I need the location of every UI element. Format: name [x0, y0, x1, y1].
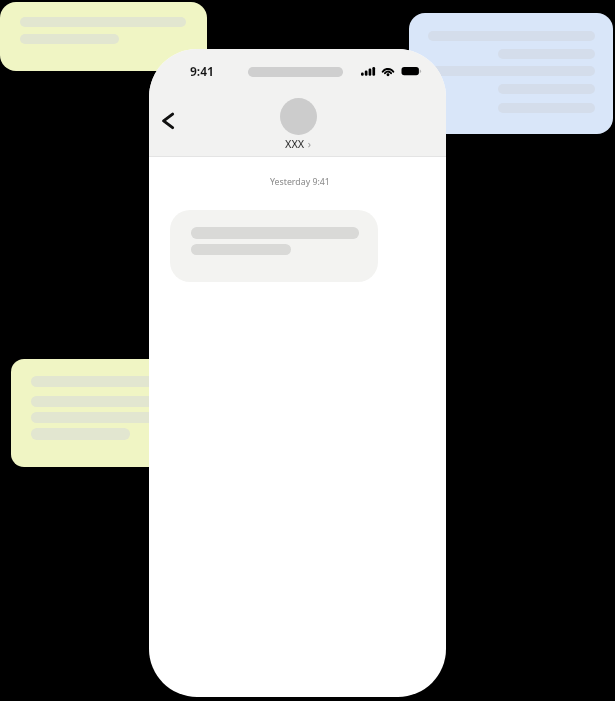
staticText: 9:41: [190, 63, 214, 79]
staticText: XXX: [285, 137, 305, 150]
staticText: Yesterday 9:41: [270, 176, 330, 188]
button[interactable]: [0, 2, 207, 71]
button[interactable]: [170, 210, 378, 282]
button[interactable]: [153, 105, 179, 133]
button[interactable]: [409, 13, 613, 134]
button[interactable]: [11, 359, 171, 467]
button[interactable]: XXX: [259, 93, 337, 153]
staticText: ›: [305, 137, 311, 150]
